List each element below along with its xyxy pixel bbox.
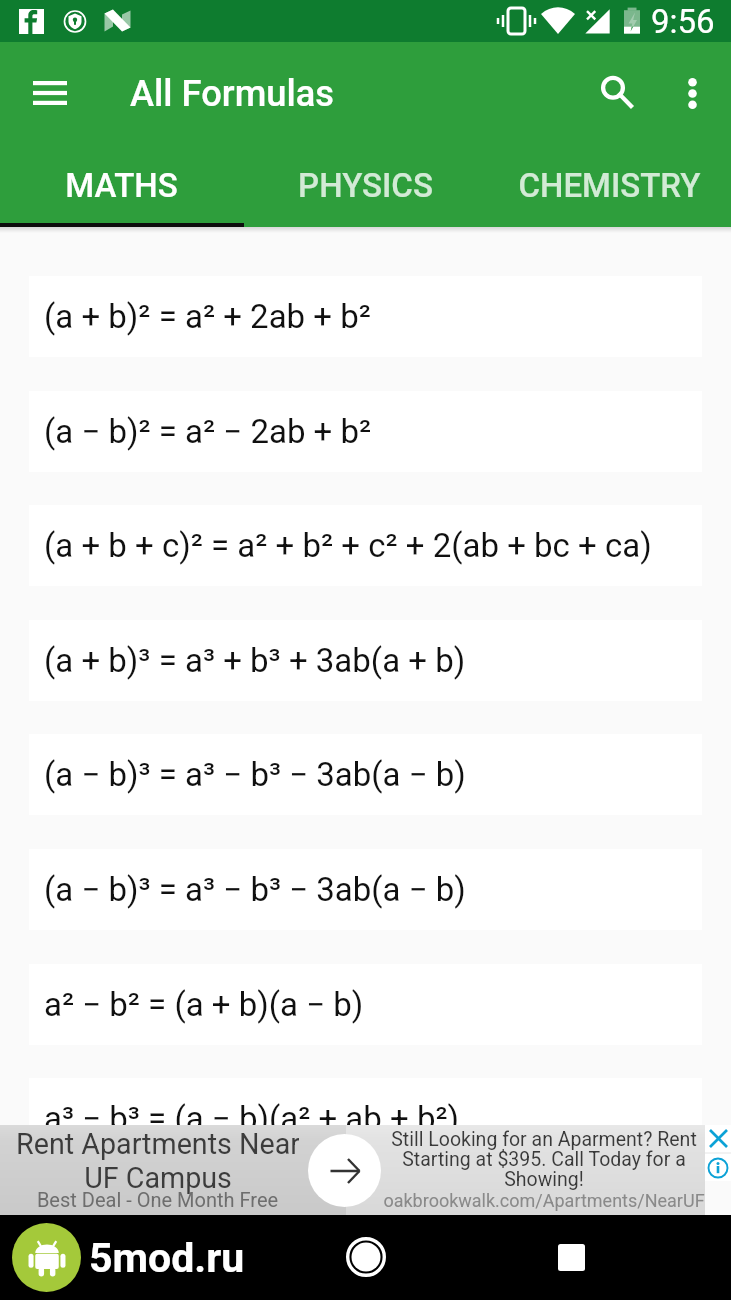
button[interactable]: Open ad: [308, 1134, 381, 1207]
staticText: (a − b)² = a² − 2ab + b²: [44, 412, 372, 451]
staticText: a³ − b³ = (a − b)(a² + ab + b²): [44, 1099, 460, 1138]
button[interactable]: Still Looking for an Aparment? Rent Star…: [346, 1125, 705, 1215]
staticText: (a − b)³ = a³ − b³ − 3ab(a − b): [44, 755, 466, 794]
staticText: Rent Apartments Near UF Campus: [16, 1127, 299, 1195]
button[interactable]: Close ad: [705, 1125, 731, 1152]
button[interactable]: MATHS: [0, 144, 243, 227]
button[interactable]: Home: [334, 1225, 398, 1289]
button[interactable]: Recents: [539, 1225, 603, 1289]
staticText: 5mod.ru: [89, 1234, 245, 1282]
staticText: (a − b)³ = a³ − b³ − 3ab(a − b): [44, 870, 466, 909]
button[interactable]: (a − b)² = a² − 2ab + b²: [29, 391, 702, 472]
button[interactable]: Ad information: [705, 1154, 731, 1181]
staticText: MATHS: [65, 166, 178, 205]
staticText: All Formulas: [130, 72, 334, 115]
button[interactable]: Search: [575, 42, 653, 144]
button[interactable]: (a + b)³ = a³ + b³ + 3ab(a + b): [29, 620, 702, 701]
staticText: PHYSICS: [298, 166, 433, 205]
staticText: Still Looking for an Aparment? Rent Star…: [391, 1128, 697, 1190]
button[interactable]: Menu: [0, 42, 100, 144]
button[interactable]: a³ − b³ = (a − b)(a² + ab + b²): [29, 1078, 702, 1159]
button[interactable]: CHEMISTRY: [487, 144, 731, 227]
staticText: 9:56: [651, 2, 715, 41]
staticText: Best Deal - One Month Free: [16, 1188, 299, 1211]
button[interactable]: (a + b)² = a² + 2ab + b²: [29, 276, 702, 357]
button[interactable]: (a − b)³ = a³ − b³ − 3ab(a − b): [29, 734, 702, 815]
button[interactable]: More options: [653, 42, 731, 144]
button[interactable]: Rent Apartments Near UF Campus: [0, 1125, 346, 1215]
staticText: CHEMISTRY: [518, 166, 701, 205]
staticText: a² − b² = (a + b)(a − b): [44, 985, 364, 1024]
button[interactable]: PHYSICS: [243, 144, 487, 227]
staticText: (a + b)³ = a³ + b³ + 3ab(a + b): [44, 641, 466, 680]
button[interactable]: (a + b + c)² = a² + b² + c² + 2(ab + bc …: [29, 505, 702, 586]
staticText: (a + b + c)² = a² + b² + c² + 2(ab + bc …: [44, 526, 652, 565]
staticText: oakbrookwalk.com/Apartments/NearUF: [383, 1190, 705, 1211]
button[interactable]: (a − b)³ = a³ − b³ − 3ab(a − b): [29, 849, 702, 930]
button[interactable]: a² − b² = (a + b)(a − b): [29, 964, 702, 1045]
staticText: (a + b)² = a² + 2ab + b²: [44, 297, 371, 336]
